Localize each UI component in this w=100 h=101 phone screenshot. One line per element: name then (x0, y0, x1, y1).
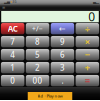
button[interactable]: 0 (1, 75, 24, 86)
staticText: 3 (60, 62, 65, 73)
staticText: 1 (10, 62, 15, 73)
staticText: 5 (35, 49, 40, 60)
staticText: 0 (10, 75, 15, 86)
staticText: . (61, 75, 63, 86)
staticText: ▄▂ (93, 0, 99, 4)
button[interactable]: 6 (51, 49, 74, 60)
staticText: ÷ (85, 22, 90, 35)
staticText: ▁▃▅ (1, 0, 10, 4)
staticText: AC (8, 23, 18, 34)
button[interactable]: = (76, 75, 99, 86)
button[interactable]: . (51, 75, 74, 86)
button[interactable]: ← (51, 23, 74, 34)
button[interactable]: 4 (1, 49, 24, 60)
staticText: 2 (35, 62, 40, 73)
staticText: = (85, 74, 90, 87)
staticText: +/− (32, 24, 43, 33)
button[interactable]: 8 (26, 36, 49, 47)
button[interactable]: + (76, 62, 99, 73)
button[interactable]: 9 (51, 36, 74, 47)
staticText: × (85, 35, 90, 48)
button[interactable]: 00 (26, 75, 49, 86)
button[interactable]: 1 (1, 62, 24, 73)
staticText: 00 (32, 75, 42, 86)
staticText: 4 (10, 49, 15, 60)
staticText: ← (59, 24, 66, 33)
button[interactable]: ÷ (76, 23, 99, 34)
button[interactable]: 7 (1, 36, 24, 47)
button[interactable]: × (76, 36, 99, 47)
staticText: 3G (12, 0, 16, 4)
staticText: 6 (60, 49, 65, 60)
button[interactable]: 3 (51, 62, 74, 73)
button[interactable]: Ad · Play now (28, 92, 72, 100)
button[interactable]: − (76, 49, 99, 60)
staticText: 8 (35, 36, 40, 47)
staticText: 7 (10, 36, 15, 47)
staticText: ≡ (2, 5, 5, 10)
button[interactable]: +/− (26, 23, 49, 34)
button[interactable]: 5 (26, 49, 49, 60)
staticText: + (85, 61, 90, 74)
button[interactable]: 2 (26, 62, 49, 73)
button[interactable]: AC (1, 23, 24, 34)
staticText: 0 (88, 9, 95, 25)
staticText: 9 (60, 36, 65, 47)
staticText: − (85, 48, 90, 61)
staticText: Ad · Play now (37, 93, 62, 99)
